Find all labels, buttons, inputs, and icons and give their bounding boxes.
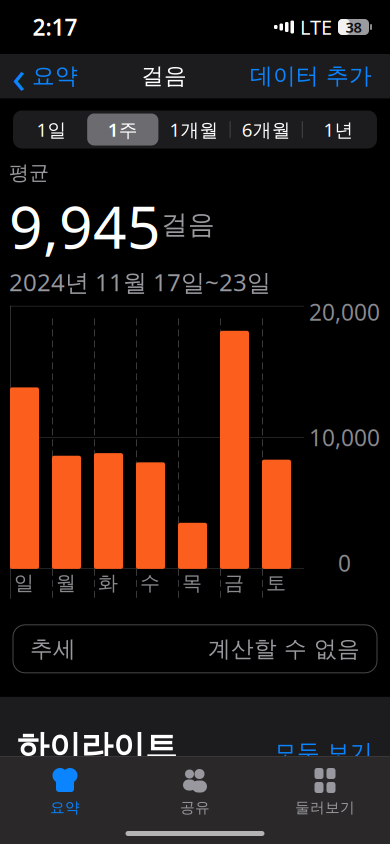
button[interactable]: 6개월 [231,113,302,145]
staticText: 2024년 11월 17일~23일 [9,266,271,298]
staticText: 평균 [9,160,49,185]
button[interactable]: 데이터 추가 [250,56,390,96]
staticText: 토 [266,571,286,595]
staticText: 수 [140,571,160,595]
button[interactable]: 1일 [16,113,87,145]
staticText: 요약 [32,62,78,90]
staticText: 하이라이트 [17,727,177,766]
staticText: 1일 [37,117,67,142]
staticText: ‹ [12,46,26,106]
staticText: 0 [338,548,351,578]
staticText: 38 [345,17,361,37]
staticText: 걸음 [161,208,215,241]
staticText: 걸음 [50,800,92,826]
staticText: 1년 [323,117,353,142]
staticText: 목 [182,571,202,595]
staticText: 걸음 [141,62,187,90]
button[interactable]: 1주 [87,113,158,145]
button[interactable]: 1개월 [158,113,230,145]
staticText: LTE [300,14,332,40]
button[interactable]: 둘러보기 [260,764,390,818]
staticText: 2:17 [32,12,77,42]
staticText: 데이터 추가 [250,62,372,90]
button[interactable]: 1년 [303,113,374,145]
staticText: 요약 [50,798,80,816]
staticText: 추세 [30,635,76,663]
button[interactable]: 모두 보기 [274,738,373,766]
staticText: 둘러보기 [295,798,355,816]
staticText: 일 [14,571,34,595]
staticText: 10,000 [309,422,380,452]
staticText: 9,945 [9,187,161,265]
staticText: 금 [224,571,244,595]
staticText: 모두 보기 [274,738,373,766]
staticText: 6개월 [242,117,291,142]
staticText: 월 [56,571,76,595]
staticText: 계산할 수 없음 [208,635,360,663]
staticText: 공유 [180,798,210,816]
button[interactable]: 요약 [0,764,130,818]
staticText: 화 [98,571,118,595]
staticText: 1개월 [169,117,218,142]
button[interactable]: ‹ [0,40,78,112]
button[interactable]: 공유 [130,764,260,818]
button[interactable]: 걸음 [13,780,377,844]
button[interactable]: 추세 [13,625,377,673]
staticText: 20,000 [309,297,380,327]
staticText: 1주 [108,117,138,142]
